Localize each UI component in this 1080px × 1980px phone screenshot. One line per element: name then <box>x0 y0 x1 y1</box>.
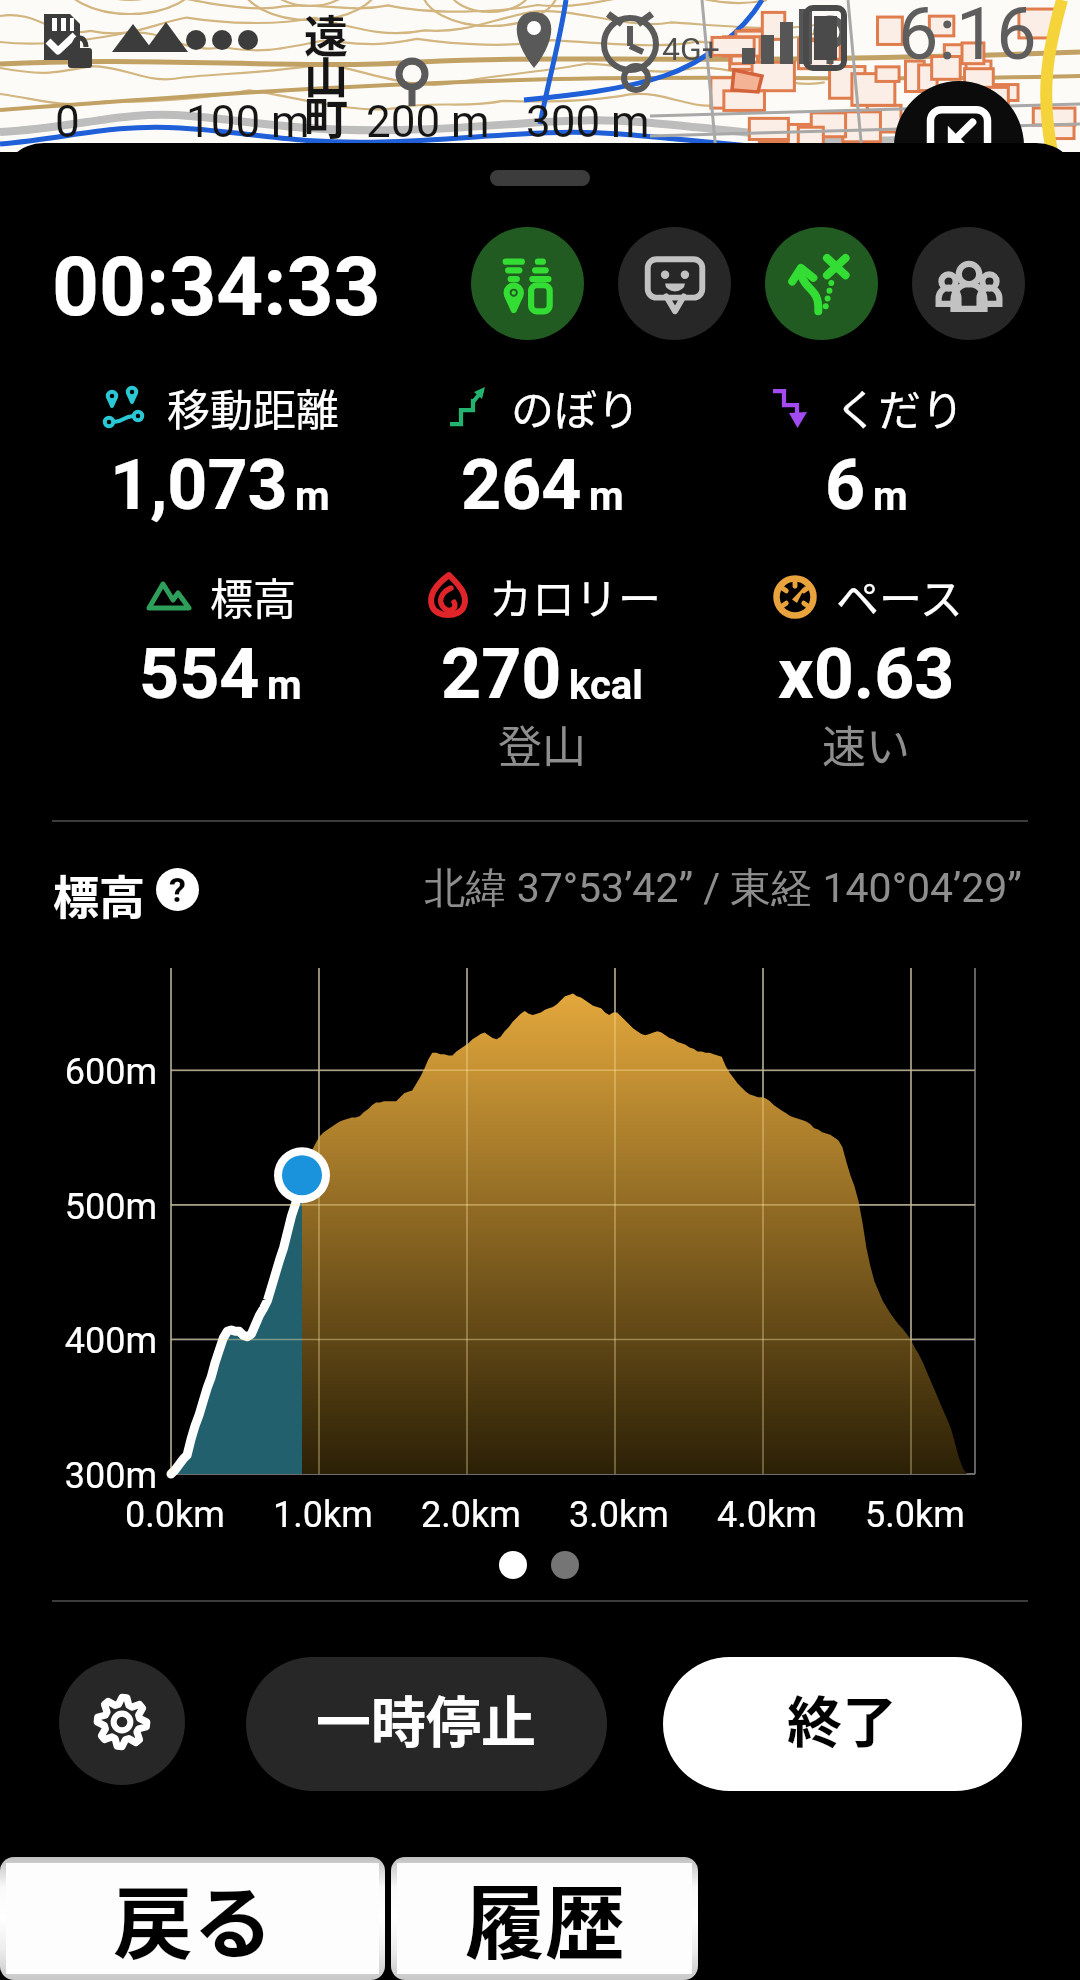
staticText: 400m <box>10 1320 157 1362</box>
staticText: 1.0km <box>223 1494 423 1536</box>
staticText: 500m <box>10 1186 157 1228</box>
staticText: 6:16 <box>898 0 1037 76</box>
staticText: 200 m <box>366 96 490 148</box>
staticText: 6 <box>825 444 866 526</box>
staticText: カロリー <box>489 565 661 627</box>
staticText: 登山 <box>342 712 742 776</box>
staticText: 264 <box>461 444 582 526</box>
staticText: 300 m <box>526 96 650 148</box>
button[interactable]: 設定 <box>59 1659 185 1785</box>
button[interactable]: メッセージ <box>618 227 731 340</box>
staticText: 標高 <box>53 861 145 928</box>
button[interactable]: メンバー <box>912 227 1025 340</box>
staticText: 移動距離 <box>167 376 339 438</box>
staticText: 554 <box>139 633 260 715</box>
button[interactable]: 滞在情報 <box>471 227 584 340</box>
staticText: 速い <box>666 712 1066 776</box>
staticText: 3.0km <box>519 1494 719 1536</box>
staticText: 履歴 <box>465 1859 625 1970</box>
staticText: ? <box>169 870 186 910</box>
staticText: 0.0km <box>75 1494 275 1536</box>
button[interactable]: 履歴 <box>397 1863 692 1974</box>
staticText: m <box>589 473 624 520</box>
button[interactable]: ルート逸脱 <box>765 227 878 340</box>
staticText: x0.63 <box>778 633 955 715</box>
staticText: 100 m <box>186 96 310 148</box>
staticText: m <box>267 662 302 709</box>
staticText: 2.0km <box>371 1494 571 1536</box>
staticText: 一時停止 <box>316 1678 537 1758</box>
staticText: 0 <box>55 96 80 148</box>
staticText: m <box>295 473 330 520</box>
staticText: m <box>873 473 908 520</box>
staticText: 4G+ <box>662 30 720 68</box>
staticText: 5.0km <box>815 1494 1015 1536</box>
button[interactable]: ヘルプ <box>156 868 199 911</box>
staticText: 標高 <box>210 565 296 627</box>
staticText: 終了 <box>787 1678 898 1758</box>
staticText: 00:34:33 <box>52 239 381 335</box>
staticText: 270 <box>441 633 562 715</box>
staticText: kcal <box>569 662 643 709</box>
staticText: 遠 山 町 <box>304 2 348 148</box>
button[interactable]: 終了 <box>663 1657 1022 1791</box>
button[interactable]: 一時停止 <box>246 1657 607 1791</box>
button[interactable]: 地図を縮小 <box>894 81 1024 211</box>
staticText: 1,073 <box>110 444 288 526</box>
staticText: 北緯 37°53’42” / 東経 140°04’29” <box>422 863 1022 915</box>
staticText: 戻る <box>113 1859 273 1970</box>
staticText: 600m <box>10 1051 157 1093</box>
staticText: 4.0km <box>667 1494 867 1536</box>
staticText: 300m <box>10 1455 157 1497</box>
staticText: のぼり <box>511 376 640 438</box>
staticText: ペース <box>836 565 963 627</box>
staticText: くだり <box>835 376 964 438</box>
button[interactable]: 戻る <box>6 1863 379 1974</box>
